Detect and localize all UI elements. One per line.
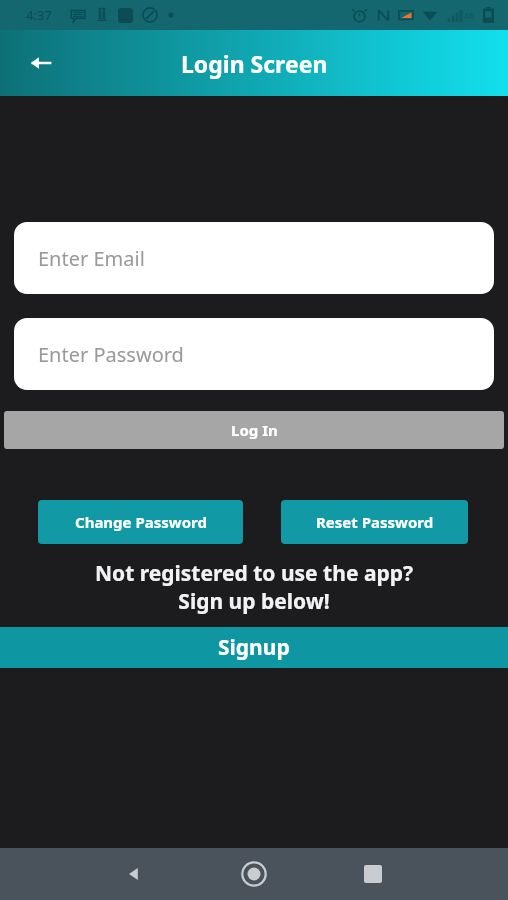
button[interactable]: Log In: [4, 411, 504, 449]
staticText: 4:37: [26, 6, 52, 24]
button[interactable]: Back: [19, 41, 63, 85]
button[interactable]: Enter Email: [14, 222, 494, 294]
staticText: Signup: [218, 633, 290, 662]
button[interactable]: Recent apps: [349, 850, 397, 898]
staticText: Enter Password: [38, 341, 184, 368]
staticText: 4G: [464, 10, 475, 21]
staticText: Reset Password: [316, 512, 434, 532]
button[interactable]: Change Password: [38, 500, 243, 544]
staticText: Log In: [231, 420, 278, 440]
staticText: Not registered to use the app? Sign up b…: [0, 559, 508, 615]
button[interactable]: Back: [109, 850, 157, 898]
button[interactable]: Reset Password: [281, 500, 468, 544]
staticText: Enter Email: [38, 245, 145, 272]
button[interactable]: Enter Password: [14, 318, 494, 390]
staticText: Change Password: [75, 512, 207, 532]
button[interactable]: Signup: [0, 627, 508, 668]
staticText: Login Screen: [181, 48, 328, 79]
button[interactable]: Home: [230, 850, 278, 898]
